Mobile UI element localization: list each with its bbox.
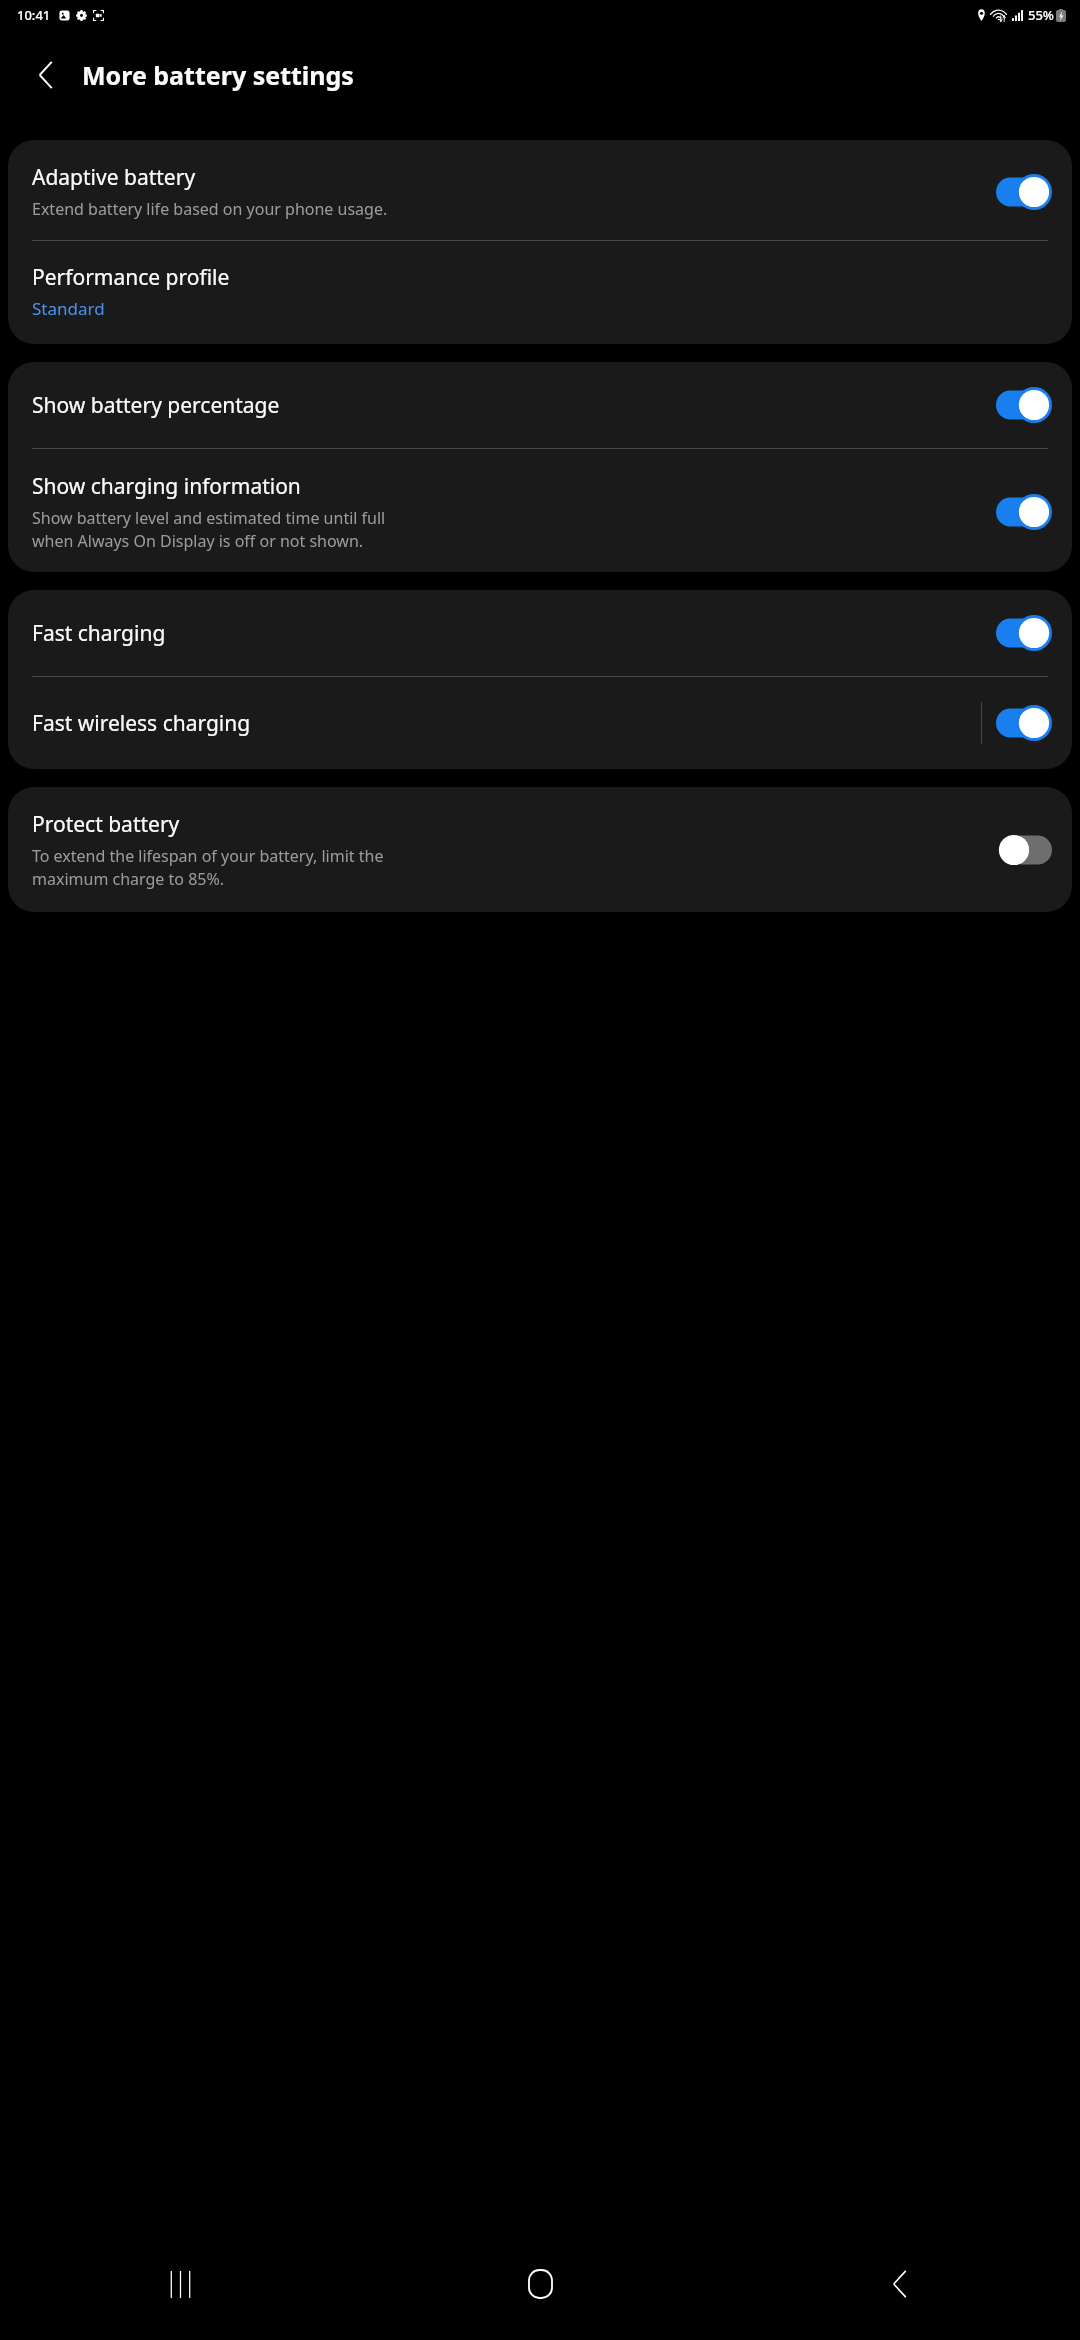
button[interactable]: On [996,174,1052,210]
button[interactable]: Fast charging [8,590,1072,676]
staticText: Show battery percentage [32,391,280,420]
button[interactable]: On [996,705,1052,741]
staticText: To extend the lifespan of your battery, … [32,845,384,890]
button[interactable]: Back [720,2228,1080,2340]
staticText: Show battery level and estimated time un… [32,507,386,552]
button[interactable]: Show charging information [8,449,1072,572]
button[interactable]: Fast wireless charging [8,677,1072,769]
button[interactable]: On [996,387,1052,423]
button[interactable]: Recents [0,2228,360,2340]
button[interactable]: Show battery percentage [8,362,1072,448]
button[interactable]: Home [360,2228,720,2340]
button[interactable]: Navigate up [18,47,74,103]
staticText: 10:41 [17,6,51,24]
staticText: Fast wireless charging [32,709,251,738]
button[interactable]: On [996,494,1052,530]
staticText: More battery settings [82,58,354,92]
staticText: Standard [32,297,105,320]
button[interactable]: Off [996,832,1052,868]
button[interactable]: Performance profile [8,241,1072,344]
staticText: Extend battery life based on your phone … [32,198,388,220]
staticText: Performance profile [32,263,230,292]
button[interactable]: Protect battery [8,787,1072,912]
button[interactable]: On [996,615,1052,651]
staticText: Protect battery [32,810,180,839]
staticText: 55% [1028,6,1054,24]
staticText: Adaptive battery [32,163,196,192]
staticText: Fast charging [32,619,166,648]
staticText: Show charging information [32,472,301,501]
button[interactable]: Adaptive battery [8,140,1072,240]
